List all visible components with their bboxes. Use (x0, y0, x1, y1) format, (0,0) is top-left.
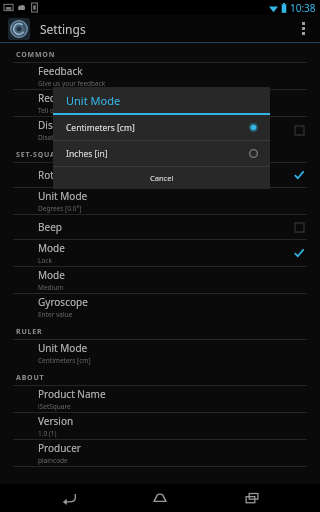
staticText: Enter value (38, 310, 73, 319)
button[interactable]: Recommend (0, 90, 320, 116)
staticText: Unit Mode (38, 189, 88, 203)
staticText: Give us your feedback (38, 79, 106, 88)
button[interactable]: Product Name (0, 386, 320, 412)
button[interactable]: Disable Sleep (0, 117, 320, 143)
staticText: COMMON (16, 50, 56, 60)
button[interactable]: Home (137, 484, 183, 512)
staticText: Disable screen turning off while app is … (38, 133, 181, 142)
staticText: Centimeters [cm] (38, 356, 91, 365)
staticText: Lock (38, 256, 52, 265)
staticText: ABOUT (16, 373, 45, 383)
staticText: Degrees [0.0°] (38, 204, 82, 213)
staticText: Tell others about this app (38, 106, 116, 115)
button[interactable]: Gyroscope (0, 294, 320, 320)
button[interactable]: Inches [in] (53, 141, 270, 166)
staticText: plaincode (38, 456, 68, 465)
staticText: Unit Mode (66, 93, 121, 108)
staticText: Medium (38, 283, 64, 292)
staticText: 1.0 (1) (38, 429, 57, 438)
staticText: Producer (38, 441, 81, 455)
button[interactable]: Beep (0, 215, 320, 239)
button[interactable]: Unit Mode (0, 188, 320, 214)
staticText: Version (38, 414, 74, 428)
button[interactable]: More options (292, 15, 314, 42)
staticText: Mode (38, 268, 65, 282)
staticText: Rotate Set Square (38, 168, 122, 182)
staticText: Mode (38, 241, 65, 255)
button[interactable]: Producer (0, 440, 320, 466)
staticText: Unit Mode (38, 341, 88, 355)
staticText: Product Name (38, 387, 106, 401)
staticText: SET-SQUARE (16, 150, 66, 160)
staticText: Centimeters [cm] (66, 122, 135, 134)
button[interactable]: Cancel (53, 167, 270, 189)
staticText: Recommend (38, 91, 98, 105)
button[interactable]: Version (0, 413, 320, 439)
button[interactable]: Centimeters [cm] (53, 115, 270, 140)
button[interactable]: Back (46, 484, 92, 512)
staticText: Beep (38, 220, 62, 234)
staticText: iSetSquare (38, 402, 71, 411)
staticText: Inches [in] (66, 148, 108, 160)
button[interactable]: App icon (8, 18, 30, 40)
button[interactable]: Rotate Set Square (0, 163, 320, 187)
staticText: Feedback (38, 64, 83, 78)
button[interactable]: Feedback (0, 63, 320, 89)
button[interactable]: Mode (0, 267, 320, 293)
staticText: Settings (40, 21, 86, 37)
staticText: RULER (16, 327, 43, 337)
button[interactable]: Unit Mode (0, 340, 320, 366)
button[interactable]: Recent apps (229, 484, 275, 512)
button[interactable]: Mode (0, 240, 320, 266)
staticText: Disable Sleep (38, 118, 101, 132)
staticText: Cancel (150, 173, 174, 183)
staticText: Gyroscope (38, 295, 88, 309)
staticText: 10:38 (290, 1, 316, 15)
